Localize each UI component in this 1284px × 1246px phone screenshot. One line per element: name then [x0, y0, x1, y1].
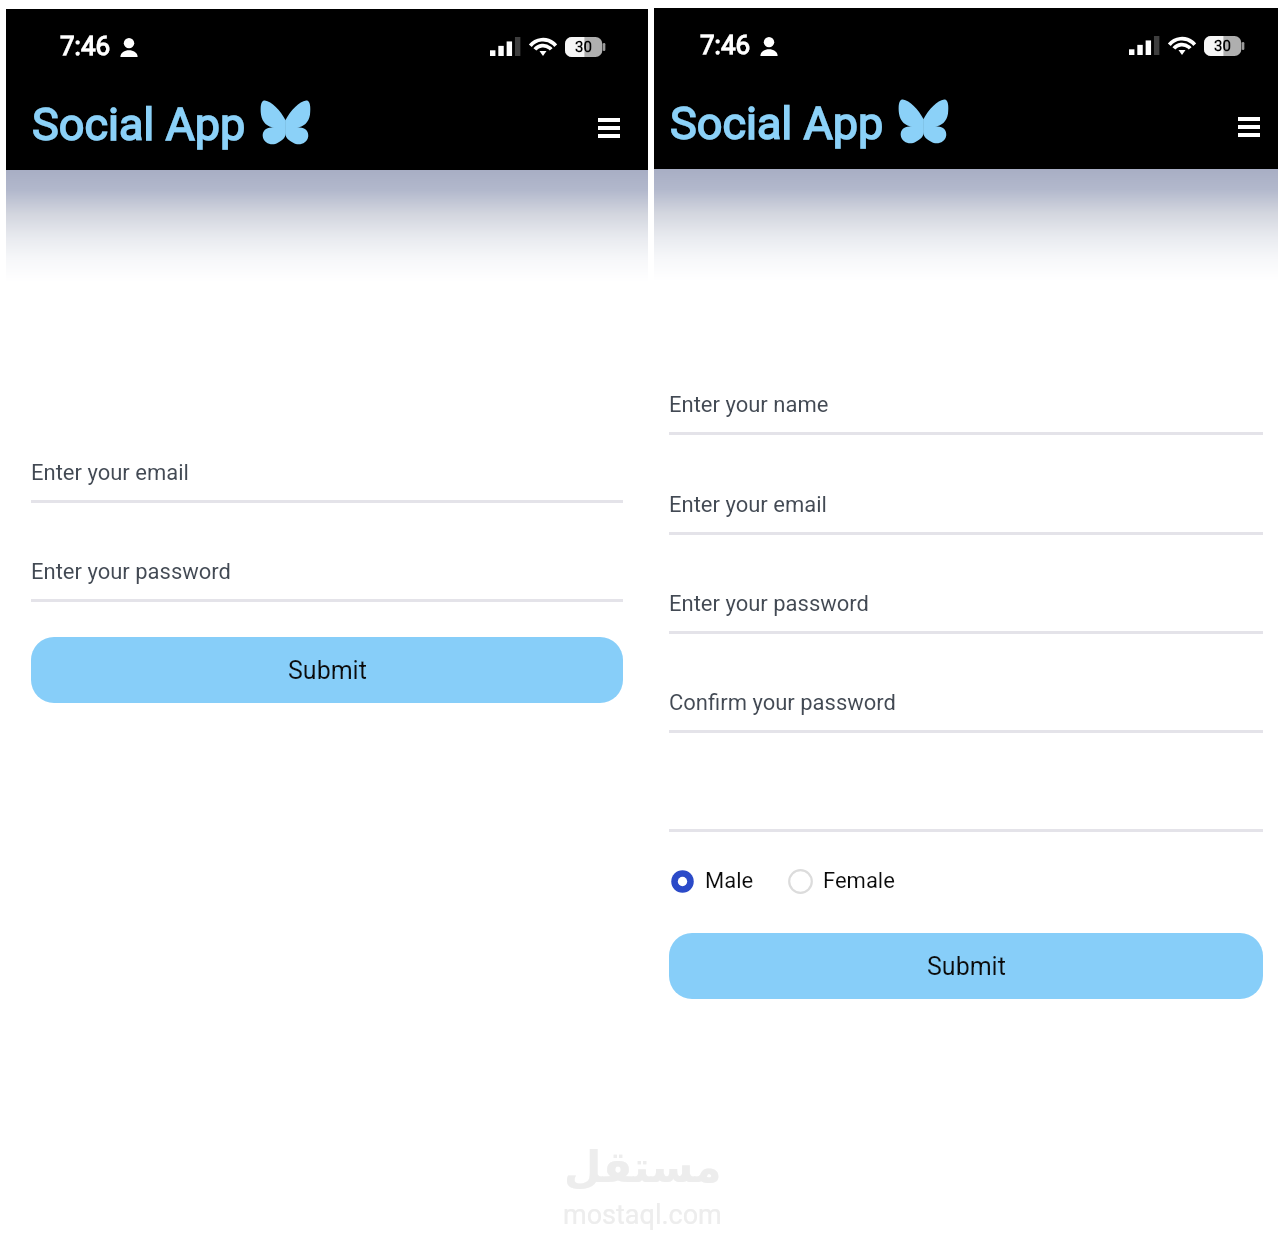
staticText: Submit — [288, 656, 367, 685]
staticText: 30 — [1214, 37, 1231, 55]
button[interactable]: Submit — [31, 637, 623, 703]
staticText: Submit — [927, 952, 1006, 981]
staticText: مستقل — [564, 1142, 722, 1192]
button[interactable]: Female — [788, 868, 895, 894]
staticText: Social App — [670, 97, 884, 150]
button[interactable]: Enter your email — [654, 485, 1278, 535]
staticText: Female — [823, 868, 895, 894]
staticText: Male — [705, 868, 754, 894]
button[interactable]: Male — [670, 868, 754, 894]
button[interactable]: Open navigation menu — [586, 105, 632, 151]
staticText: Confirm your password — [669, 690, 897, 716]
staticText: Social App — [32, 98, 246, 151]
button[interactable]: Submit — [669, 933, 1263, 999]
staticText: Enter your password — [31, 559, 232, 585]
button[interactable]: Enter your name — [654, 385, 1278, 435]
staticText: Enter your email — [31, 460, 189, 486]
button[interactable]: Enter your password — [6, 552, 648, 602]
staticText: 7:46 — [60, 31, 111, 61]
button[interactable]: Confirm your password — [654, 683, 1278, 733]
button[interactable]: Enter your password — [654, 584, 1278, 634]
button[interactable]: Open navigation menu — [1226, 104, 1272, 150]
staticText: Enter your password — [669, 591, 870, 617]
staticText: Enter your email — [669, 492, 827, 518]
staticText: mostaql.com — [563, 1199, 722, 1231]
button[interactable]: Enter your email — [6, 453, 648, 503]
staticText: 7:46 — [700, 30, 751, 60]
staticText: 30 — [575, 38, 592, 56]
staticText: Enter your name — [669, 392, 829, 418]
